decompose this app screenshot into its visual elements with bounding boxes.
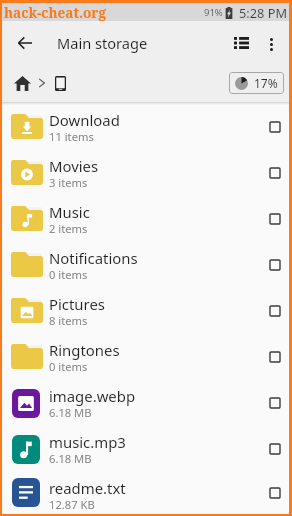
button[interactable]: Select Ringtones	[263, 345, 287, 369]
button[interactable]: Select Notifications	[263, 253, 287, 277]
button[interactable]: 17%	[229, 72, 284, 94]
staticText: Notifications	[49, 248, 138, 268]
staticText: 0 items	[49, 267, 88, 282]
button[interactable]: Home	[10, 71, 34, 95]
button[interactable]: Movies	[2, 151, 289, 197]
button[interactable]: More options	[257, 30, 285, 58]
button[interactable]: readme.txt	[2, 473, 289, 514]
staticText: 91%	[204, 6, 223, 19]
staticText: 5:28 PM	[239, 4, 288, 21]
staticText: hack-cheat.org	[4, 3, 106, 21]
staticText: music.mp3	[49, 432, 126, 452]
staticText: 0 items	[49, 359, 88, 374]
staticText: image.webp	[49, 386, 136, 406]
button[interactable]: Select image.webp	[263, 391, 287, 415]
staticText: 3 items	[49, 175, 88, 190]
staticText: Movies	[49, 156, 99, 176]
staticText: Ringtones	[49, 340, 120, 360]
button[interactable]: Download	[2, 105, 289, 151]
button[interactable]: image.webp	[2, 381, 289, 427]
button[interactable]: Ringtones	[2, 335, 289, 381]
staticText: Download	[49, 110, 120, 130]
staticText: readme.txt	[49, 478, 126, 498]
button[interactable]: Select Download	[263, 115, 287, 139]
staticText: 2 items	[49, 221, 88, 236]
button[interactable]: Select music.mp3	[263, 437, 287, 461]
button[interactable]: Music	[2, 197, 289, 243]
staticText: Music	[49, 202, 90, 222]
staticText: 6.18 MB	[49, 405, 92, 420]
staticText: 11 items	[49, 129, 94, 144]
button[interactable]: Pictures	[2, 289, 289, 335]
button[interactable]: music.mp3	[2, 427, 289, 473]
staticText: 8 items	[49, 313, 88, 328]
button[interactable]: Select Music	[263, 207, 287, 231]
staticText: 17%	[254, 75, 278, 91]
staticText: Pictures	[49, 294, 105, 314]
button[interactable]: Select Movies	[263, 161, 287, 185]
staticText: 6.18 MB	[49, 451, 92, 466]
button[interactable]: Internal storage	[49, 72, 71, 94]
staticText: 12.87 KB	[49, 497, 95, 512]
button[interactable]: Notifications	[2, 243, 289, 289]
staticText: Main storage	[57, 33, 148, 53]
button[interactable]: Back	[9, 27, 41, 59]
button[interactable]: List view	[226, 28, 256, 58]
button[interactable]: Select readme.txt	[263, 481, 287, 505]
button[interactable]: Select Pictures	[263, 299, 287, 323]
